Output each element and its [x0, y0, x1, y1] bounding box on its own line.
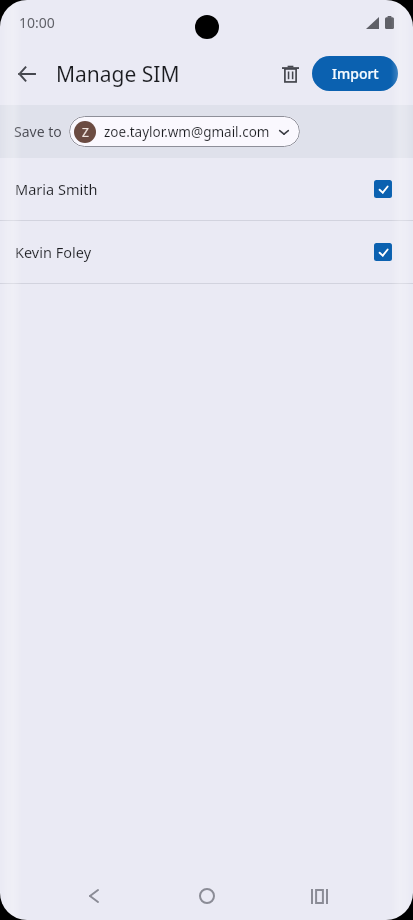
button[interactable]: Home: [183, 872, 231, 920]
button[interactable]: Delete: [270, 54, 310, 94]
button[interactable]: Z: [69, 116, 300, 147]
button[interactable]: Back: [70, 872, 118, 920]
staticText: zoe.taylor.wm@gmail.com: [104, 123, 270, 141]
staticText: Z: [82, 124, 89, 140]
staticText: Save to: [14, 122, 62, 141]
button[interactable]: Maria Smith: [0, 158, 413, 220]
button[interactable]: Back: [6, 54, 46, 94]
button[interactable]: Kevin Foley: [0, 221, 413, 283]
staticText: 10:00: [19, 13, 55, 32]
staticText: Manage SIM: [56, 60, 180, 89]
button[interactable]: Recent apps: [295, 872, 343, 920]
staticText: Maria Smith: [15, 179, 98, 199]
staticText: Kevin Foley: [15, 242, 92, 262]
button[interactable]: Import: [312, 56, 398, 91]
staticText: Import: [332, 64, 379, 83]
